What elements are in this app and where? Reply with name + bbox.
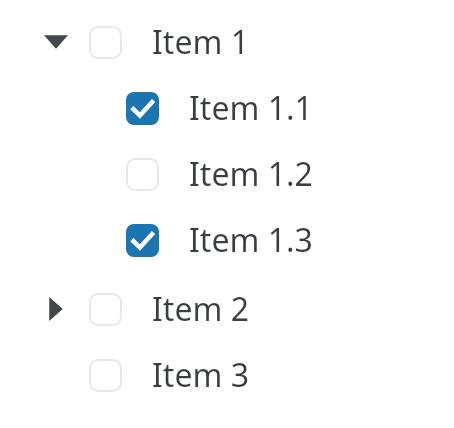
staticText: Item 1.1 — [189, 86, 313, 130]
button[interactable]: Item 3 — [152, 342, 249, 408]
staticText: Item 1 — [152, 20, 249, 64]
button[interactable]: Item 1.3 — [189, 207, 313, 273]
button[interactable]: Item 1.1 — [189, 75, 313, 141]
button[interactable]: Item 2 — [152, 276, 249, 342]
button[interactable]: Item 1.1 checked — [126, 75, 159, 141]
button[interactable]: Item 1.2 unchecked — [126, 141, 159, 207]
button[interactable]: Collapse Item 1 — [44, 9, 72, 75]
button[interactable]: Expand Item 2 — [0, 276, 454, 342]
button[interactable]: Item 1.2 unchecked — [0, 141, 454, 207]
button[interactable]: Expand Item 2 — [44, 276, 72, 342]
staticText: Item 1.3 — [189, 218, 313, 262]
button[interactable]: Item 3 unchecked — [89, 342, 122, 408]
button[interactable]: Item 2 unchecked — [89, 276, 122, 342]
button[interactable]: Item 1.2 — [189, 141, 313, 207]
button[interactable]: Item 3 unchecked — [0, 342, 454, 408]
button[interactable]: Item 1 — [152, 9, 249, 75]
button[interactable]: Collapse Item 1 — [0, 9, 454, 75]
staticText: Item 3 — [152, 353, 249, 397]
button[interactable]: Item 1 unchecked — [89, 9, 122, 75]
button[interactable]: Item 1.3 checked — [0, 207, 454, 273]
button[interactable]: Item 1.3 checked — [126, 207, 159, 273]
staticText: Item 2 — [152, 287, 249, 331]
staticText: Item 1.2 — [189, 152, 313, 196]
button[interactable]: Item 1.1 checked — [0, 75, 454, 141]
